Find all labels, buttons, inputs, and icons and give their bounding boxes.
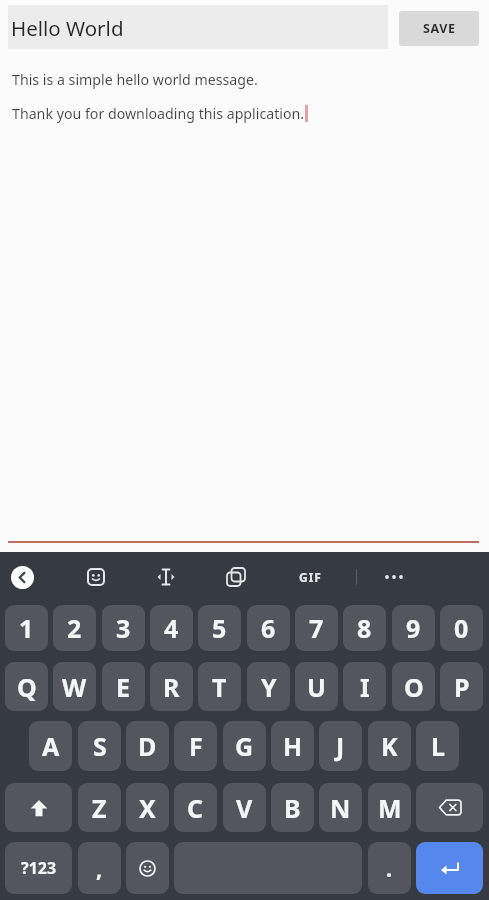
button[interactable]: , (78, 842, 121, 894)
staticText: Z (92, 791, 107, 825)
button[interactable]: GIF (290, 566, 330, 588)
button[interactable]: N (319, 783, 362, 832)
button[interactable] (5, 783, 72, 832)
staticText: ?123 (21, 857, 57, 879)
button[interactable]: D (126, 721, 169, 771)
button[interactable] (126, 842, 169, 894)
staticText: 4 (164, 611, 179, 645)
button[interactable]: Q (5, 662, 48, 711)
button[interactable]: 1 (5, 605, 48, 651)
button[interactable]: Y (247, 662, 290, 711)
button[interactable]: SAVE (399, 11, 479, 46)
staticText: 9 (406, 611, 421, 645)
button[interactable]: K (368, 721, 411, 771)
staticText: B (284, 791, 301, 825)
button[interactable]: S (78, 721, 121, 771)
staticText: W (62, 670, 87, 704)
staticText: 2 (67, 611, 82, 645)
button[interactable] (225, 566, 247, 588)
staticText: 1 (19, 611, 34, 645)
button[interactable]: P (440, 662, 483, 711)
staticText: P (454, 670, 470, 704)
button[interactable]: I (343, 662, 386, 711)
staticText: Thank you for downloading this applicati… (12, 104, 305, 123)
staticText: 8 (357, 611, 372, 645)
button[interactable]: U (295, 662, 338, 711)
staticText: A (42, 729, 60, 763)
staticText: 0 (454, 611, 469, 645)
staticText: 6 (261, 611, 276, 645)
staticText: F (189, 729, 203, 763)
button[interactable]: T (198, 662, 241, 711)
staticText: GIF (299, 569, 322, 585)
button[interactable]: M (368, 783, 411, 832)
button[interactable]: 0 (440, 605, 483, 651)
button[interactable]: 2 (53, 605, 96, 651)
button[interactable] (416, 842, 483, 894)
button[interactable]: R (150, 662, 193, 711)
staticText: X (139, 791, 156, 825)
button[interactable]: J (319, 721, 362, 771)
staticText: 5 (212, 611, 227, 645)
staticText: K (381, 729, 398, 763)
button[interactable]: Z (78, 783, 121, 832)
staticText: 7 (309, 611, 324, 645)
button[interactable] (416, 783, 483, 832)
staticText: SAVE (423, 20, 456, 37)
button[interactable]: 4 (150, 605, 193, 651)
button[interactable]: B (271, 783, 314, 832)
button[interactable]: H (271, 721, 314, 771)
button[interactable]: 6 (247, 605, 290, 651)
staticText: J (336, 729, 345, 763)
staticText: . (386, 853, 393, 883)
button[interactable]: G (223, 721, 266, 771)
button[interactable]: X (126, 783, 169, 832)
staticText: G (235, 729, 254, 763)
staticText: H (283, 729, 303, 763)
staticText: O (404, 670, 424, 704)
button[interactable]: W (53, 662, 96, 711)
button[interactable]: E (102, 662, 145, 711)
staticText: R (163, 670, 180, 704)
button[interactable]: V (223, 783, 266, 832)
button[interactable]: L (416, 721, 459, 771)
staticText: N (330, 791, 351, 825)
staticText: , (96, 853, 103, 883)
staticText: Q (17, 670, 37, 704)
button[interactable] (85, 566, 107, 588)
button[interactable]: O (392, 662, 435, 711)
staticText: Y (261, 670, 277, 704)
button[interactable] (155, 566, 177, 588)
staticText: C (187, 791, 204, 825)
button[interactable] (11, 566, 34, 589)
staticText: V (236, 791, 253, 825)
button[interactable] (380, 566, 408, 588)
button[interactable]: 3 (102, 605, 145, 651)
button[interactable]: . (368, 842, 411, 894)
button[interactable]: A (29, 721, 72, 771)
button[interactable]: C (174, 783, 217, 832)
staticText: I (360, 670, 370, 704)
staticText: 3 (116, 611, 131, 645)
staticText: M (378, 791, 402, 825)
staticText: S (93, 729, 107, 763)
staticText: D (138, 729, 157, 763)
staticText: Hello World (11, 14, 124, 42)
staticText: L (431, 729, 445, 763)
button[interactable]: 9 (392, 605, 435, 651)
button[interactable]: 5 (198, 605, 241, 651)
button[interactable]: ?123 (5, 842, 72, 894)
button[interactable]: 8 (343, 605, 386, 651)
staticText: U (307, 670, 326, 704)
staticText: This is a simple hello world message. (12, 70, 258, 89)
staticText: E (116, 670, 131, 704)
button[interactable]: F (174, 721, 217, 771)
button[interactable]: 7 (295, 605, 338, 651)
button[interactable]: Hello World (8, 5, 388, 49)
staticText: T (212, 670, 227, 704)
